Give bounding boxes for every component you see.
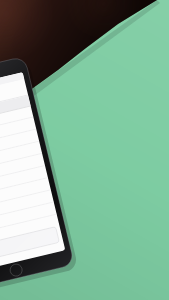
button[interactable]: App preview photo: phone on a table: [0, 0, 169, 300]
